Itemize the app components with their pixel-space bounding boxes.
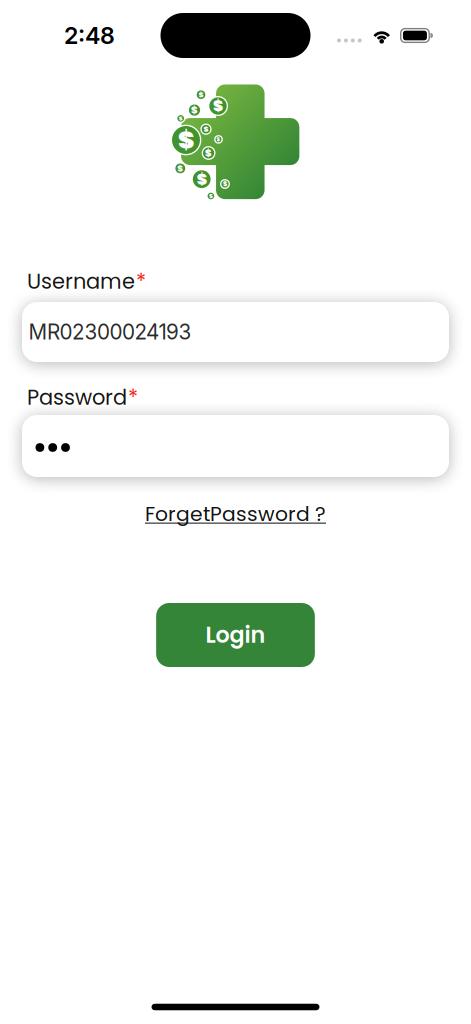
staticText: Login [205,619,265,651]
staticText: Username [27,267,135,296]
button[interactable]: Login [156,603,315,667]
button[interactable]: ForgetPassword ? [145,500,326,528]
staticText: Password [27,383,127,412]
staticText: $ [179,114,183,122]
staticText: $ [205,146,212,160]
staticText: ForgetPassword ? [145,500,326,528]
staticText: $ [191,103,198,117]
staticText: $ [198,89,203,100]
staticText: $ [209,192,213,200]
staticText: $ [177,162,183,174]
staticText: $ [178,123,194,157]
staticText: 2:48 [64,21,115,50]
staticText: $ [223,180,227,188]
staticText: $ [197,168,207,190]
staticText: $ [216,136,220,143]
staticText: $ [213,95,223,117]
button[interactable]: Password [22,415,449,477]
staticText: * [128,383,138,412]
staticText: $ [203,124,208,134]
staticText: * [136,267,146,296]
button[interactable]: MR02300024193 [22,302,449,362]
staticText: MR02300024193 [28,319,191,344]
